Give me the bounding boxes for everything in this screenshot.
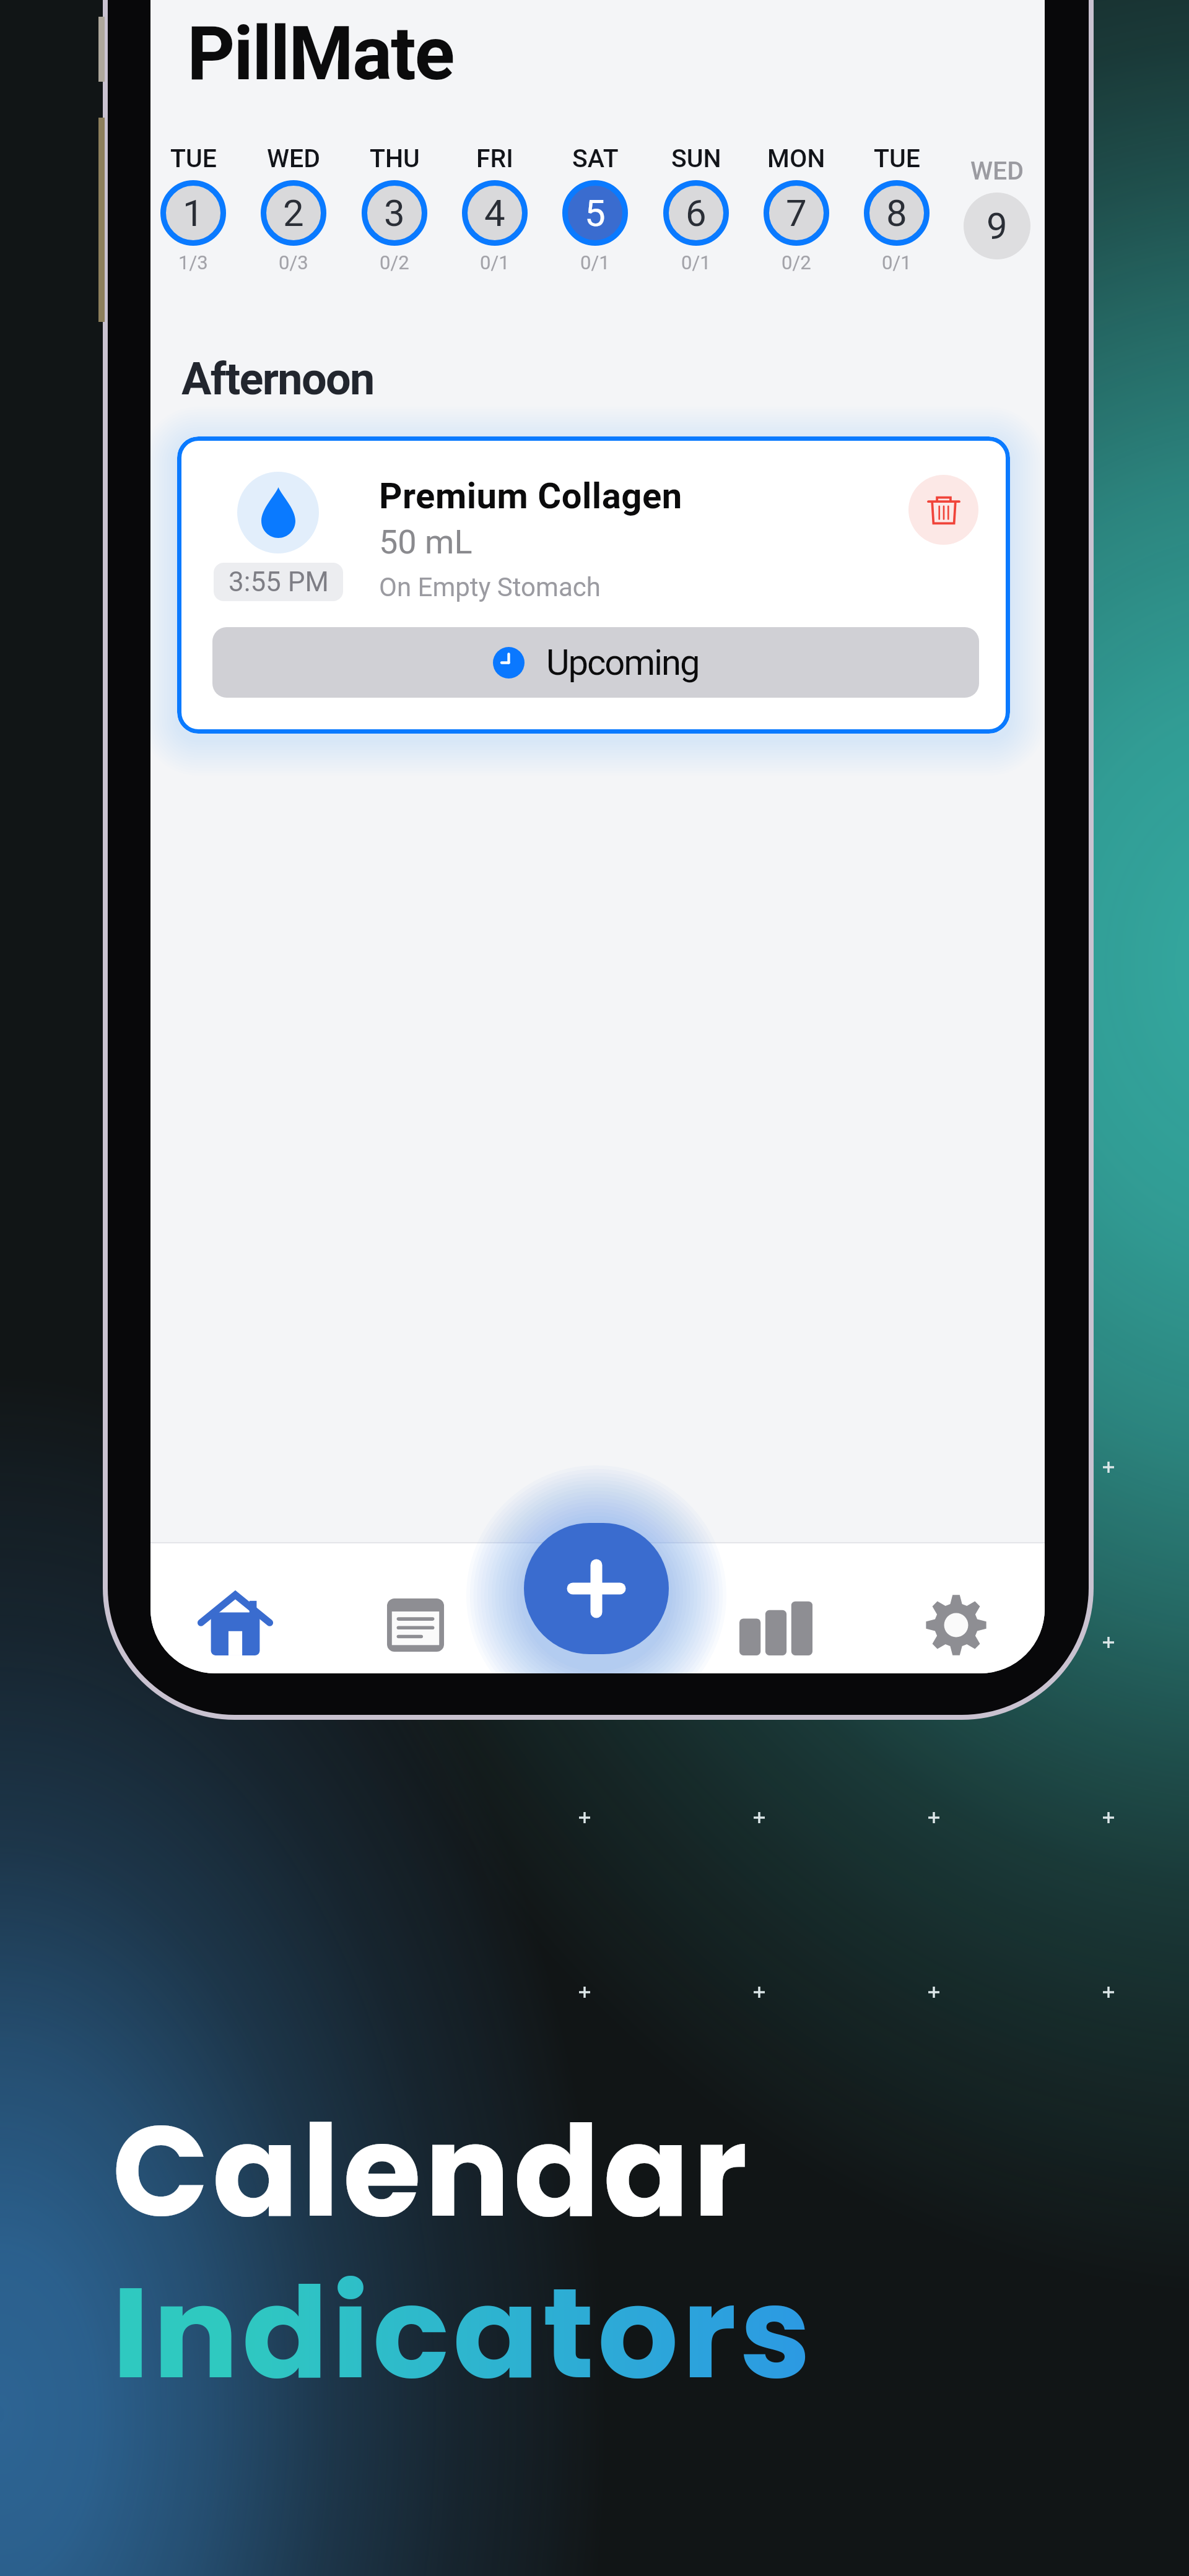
button[interactable]: MON <box>746 144 847 274</box>
staticText: 2 <box>283 191 304 235</box>
staticText: Upcoming <box>546 641 699 683</box>
button[interactable]: SAT <box>545 144 645 274</box>
staticText: TUE <box>874 144 920 173</box>
staticText: TUE <box>170 144 217 173</box>
staticText: WED <box>267 144 321 173</box>
button[interactable]: Delete <box>908 475 978 545</box>
staticText: WED <box>970 156 1024 186</box>
staticText: THU <box>370 144 420 173</box>
button[interactable]: TUE <box>847 144 947 274</box>
staticText: On Empty Stomach <box>379 572 601 602</box>
button[interactable]: Upcoming <box>212 627 979 698</box>
staticText: Afternoon <box>181 353 374 405</box>
button[interactable]: 3:55 PM <box>177 436 1010 734</box>
staticText: Premium Collagen <box>379 475 682 517</box>
staticText: 1 <box>183 191 204 235</box>
staticText: 0/2 <box>380 251 409 274</box>
staticText: 50 mL <box>379 523 473 562</box>
staticText: PillMate <box>187 11 454 98</box>
staticText: 0/1 <box>882 251 912 274</box>
staticText: 0/2 <box>782 251 811 274</box>
staticText: 0/1 <box>580 251 610 274</box>
staticText: 0/1 <box>681 251 711 274</box>
staticText: 4 <box>484 191 505 235</box>
staticText: Indicators <box>112 2244 814 2422</box>
button[interactable]: THU <box>344 144 445 274</box>
staticText: 7 <box>786 191 807 235</box>
staticText: MON <box>767 144 825 173</box>
button[interactable]: Add medication <box>524 1523 669 1654</box>
staticText: SAT <box>572 144 619 173</box>
button[interactable]: FRI <box>445 144 545 274</box>
staticText: 0/3 <box>279 251 308 274</box>
staticText: Calendar <box>112 2083 751 2260</box>
button[interactable]: WED <box>243 144 344 274</box>
staticText: 3 <box>384 191 405 235</box>
staticText: 9 <box>986 204 1008 248</box>
button[interactable]: Reminders <box>360 1563 471 1673</box>
staticText: 6 <box>686 191 707 235</box>
staticText: 5 <box>585 191 606 235</box>
staticText: 3:55 PM <box>229 566 329 598</box>
staticText: 8 <box>886 191 907 235</box>
staticText: 1/3 <box>178 251 208 274</box>
staticText: SUN <box>671 144 721 173</box>
staticText: 0/1 <box>480 251 510 274</box>
staticText: FRI <box>476 144 513 173</box>
button[interactable]: TUE <box>150 144 243 274</box>
button[interactable]: Home <box>180 1563 291 1673</box>
button[interactable]: Statistics <box>720 1563 832 1673</box>
button[interactable]: SUN <box>646 144 746 274</box>
button[interactable]: Settings <box>900 1563 1012 1673</box>
